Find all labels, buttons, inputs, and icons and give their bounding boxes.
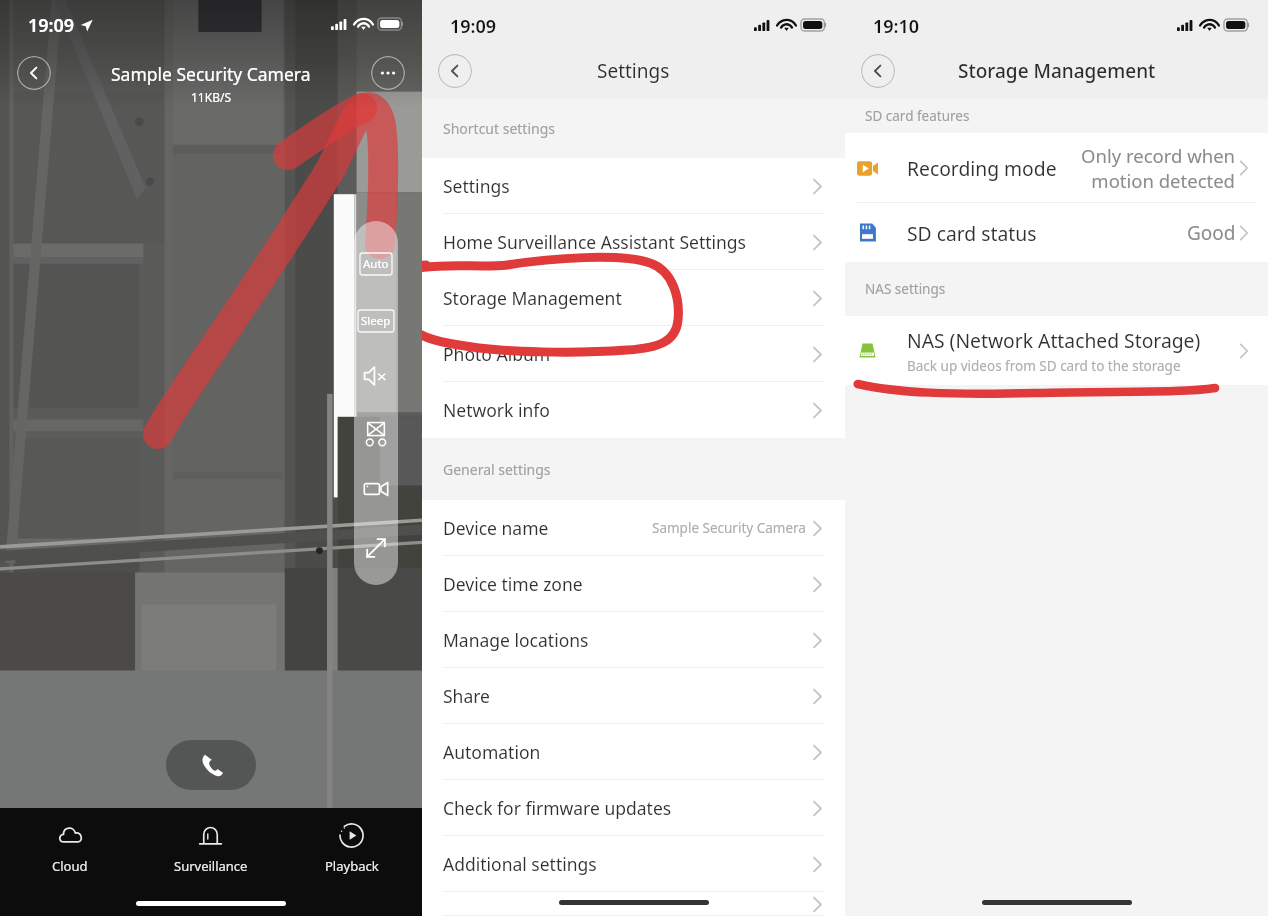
button[interactable]: Full screen: [354, 531, 398, 565]
staticText: Settings: [443, 174, 510, 198]
staticText: [443, 892, 448, 916]
button[interactable]: Back: [861, 54, 895, 88]
button[interactable]: Back: [17, 56, 51, 90]
button[interactable]: Device name: [422, 500, 845, 556]
staticText: 11KB/S: [191, 89, 232, 105]
button[interactable]: Mute: [354, 359, 398, 393]
staticText: Device time zone: [443, 572, 583, 596]
button[interactable]: More options: [371, 56, 405, 90]
staticText: Check for firmware updates: [443, 796, 672, 820]
staticText: Cloud: [52, 857, 88, 875]
staticText: Sample Security Camera: [652, 519, 806, 537]
button[interactable]: Share: [422, 668, 845, 724]
button[interactable]: Recording mode: [845, 133, 1268, 203]
button[interactable]: Talk: [166, 740, 256, 790]
staticText: Device name: [443, 516, 549, 540]
staticText: Automation: [443, 740, 541, 764]
button[interactable]: Network info: [422, 382, 845, 438]
button[interactable]: Storage Management: [422, 270, 845, 326]
button[interactable]: Home Surveillance Assistant Settings: [422, 214, 845, 270]
staticText: Sleep: [361, 313, 391, 329]
button[interactable]: NAS (Network Attached Storage): [845, 316, 1268, 385]
staticText: Network info: [443, 398, 550, 422]
staticText: Sample Security Camera: [111, 62, 311, 86]
staticText: Shortcut settings: [443, 119, 555, 138]
staticText: Surveillance: [174, 857, 248, 875]
button[interactable]: Device time zone: [422, 556, 845, 612]
staticText: SD card features: [865, 107, 970, 125]
staticText: SD card status: [907, 220, 1037, 246]
staticText: Storage Management: [443, 286, 622, 310]
button[interactable]: [422, 892, 845, 916]
button[interactable]: Record: [354, 472, 398, 506]
button[interactable]: SD card status: [845, 203, 1268, 262]
staticText: Good: [1187, 220, 1236, 246]
staticText: Back up videos from SD card to the stora…: [907, 357, 1181, 375]
staticText: Additional settings: [443, 852, 597, 876]
staticText: NAS settings: [865, 280, 946, 298]
staticText: NAS (Network Attached Storage): [907, 327, 1201, 353]
button[interactable]: Sleep: [358, 310, 394, 332]
staticText: Auto: [363, 256, 389, 272]
staticText: Manage locations: [443, 628, 589, 652]
button[interactable]: Automation: [422, 724, 845, 780]
button[interactable]: Back: [438, 54, 472, 88]
staticText: Recording mode: [907, 155, 1057, 181]
staticText: 19:10: [873, 14, 920, 39]
button[interactable]: Settings: [422, 158, 845, 214]
button[interactable]: Auto: [360, 253, 392, 275]
button[interactable]: Photo Album: [422, 326, 845, 382]
staticText: Share: [443, 684, 490, 708]
button[interactable]: Surveillance: [140, 808, 281, 886]
button[interactable]: Additional settings: [422, 836, 845, 892]
button[interactable]: Cloud: [0, 808, 140, 886]
staticText: Storage Management: [958, 58, 1156, 84]
button[interactable]: Snapshot: [354, 417, 398, 451]
button[interactable]: Check for firmware updates: [422, 780, 845, 836]
staticText: Playback: [325, 857, 379, 875]
button[interactable]: Playback: [281, 808, 422, 886]
staticText: 19:09: [450, 14, 497, 39]
staticText: General settings: [443, 460, 551, 479]
button[interactable]: Manage locations: [422, 612, 845, 668]
staticText: Photo Album: [443, 342, 551, 366]
staticText: Only record when motion detected: [1081, 143, 1235, 193]
staticText: 19:09: [28, 13, 75, 38]
staticText: Settings: [597, 58, 670, 84]
staticText: Home Surveillance Assistant Settings: [443, 230, 746, 254]
